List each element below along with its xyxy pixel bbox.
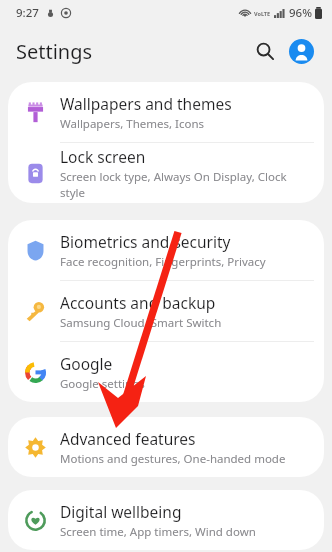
staticText: Face recognition, Fingerprints, Privacy xyxy=(60,254,266,270)
staticText: Advanced features xyxy=(60,428,196,449)
staticText: Wallpapers and themes xyxy=(60,93,232,114)
button[interactable]: Search xyxy=(248,34,282,68)
staticText: Digital wellbeing xyxy=(60,501,182,522)
button[interactable]: Google xyxy=(8,342,324,402)
staticText: Motions and gestures, One-handed mode xyxy=(60,451,286,467)
staticText: Biometrics and security xyxy=(60,231,231,252)
staticText: Accounts and backup xyxy=(60,292,216,313)
button[interactable]: Account xyxy=(284,34,318,68)
button[interactable]: Advanced features xyxy=(8,417,324,477)
button[interactable]: Digital wellbeing xyxy=(8,490,324,550)
button[interactable]: Biometrics and security xyxy=(8,220,324,280)
staticText: 9:27 xyxy=(16,5,39,21)
button[interactable]: Wallpapers and themes xyxy=(8,82,324,142)
staticText: Lock screen xyxy=(60,146,146,167)
staticText: Wallpapers, Themes, Icons xyxy=(60,116,205,132)
staticText: Samsung Cloud, Smart Switch xyxy=(60,315,222,331)
staticText: VoLTE xyxy=(254,10,271,17)
staticText: Settings xyxy=(16,38,93,65)
staticText: Screen time, App timers, Wind down xyxy=(60,524,256,540)
staticText: Screen lock type, Always On Display, Clo… xyxy=(60,169,314,201)
button[interactable]: Lock screen xyxy=(8,143,324,203)
staticText: Google settings xyxy=(60,376,145,392)
staticText: 96% xyxy=(289,5,312,21)
staticText: Google xyxy=(60,353,113,374)
button[interactable]: Accounts and backup xyxy=(8,281,324,341)
